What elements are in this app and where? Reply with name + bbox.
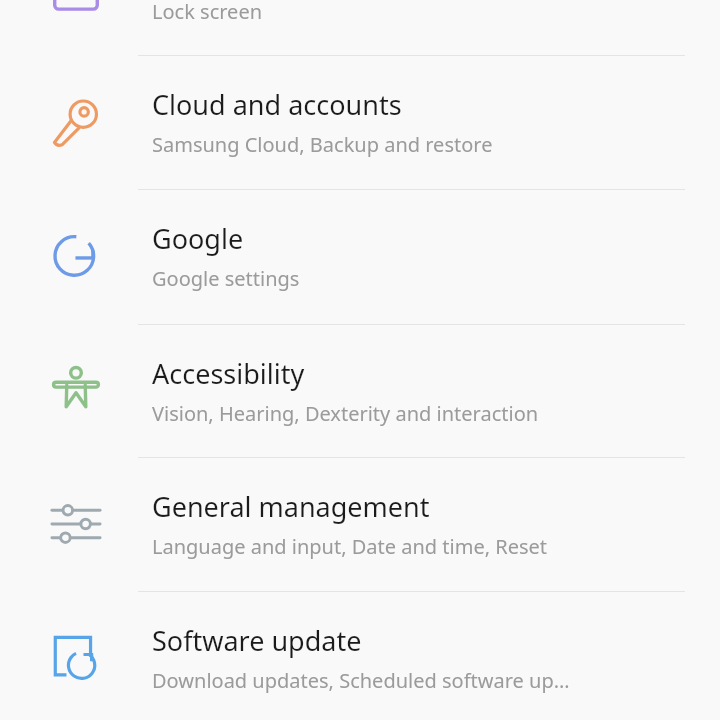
button[interactable]: General management — [0, 457, 720, 591]
staticText: Google — [152, 220, 244, 257]
button[interactable]: Accessibility — [0, 324, 720, 458]
staticText: Accessibility — [152, 355, 305, 392]
staticText: Download updates, Scheduled software up… — [152, 667, 570, 694]
staticText: General management — [152, 488, 430, 525]
staticText: Samsung Cloud, Backup and restore — [152, 131, 493, 158]
staticText: Lock screen — [152, 0, 263, 25]
staticText: Cloud and accounts — [152, 86, 402, 123]
button[interactable]: Google — [0, 189, 720, 323]
button[interactable]: Software update — [0, 591, 720, 720]
staticText: Google settings — [152, 265, 300, 292]
button[interactable]: Cloud and accounts — [0, 55, 720, 189]
button[interactable]: Lock screen and security — [0, 0, 720, 56]
staticText: Language and input, Date and time, Reset — [152, 533, 548, 560]
staticText: Software update — [152, 622, 362, 659]
staticText: Vision, Hearing, Dexterity and interacti… — [152, 400, 539, 427]
